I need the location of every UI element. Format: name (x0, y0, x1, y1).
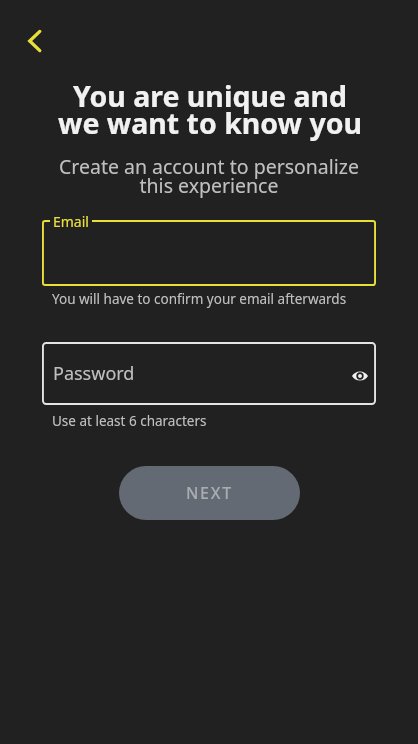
staticText: Use at least 6 characters (52, 412, 207, 430)
staticText: Email (53, 212, 89, 231)
button[interactable]: Back (12, 18, 58, 64)
button[interactable]: Password (42, 342, 376, 405)
staticText: You will have to confirm your email afte… (52, 290, 347, 308)
staticText: Password (53, 361, 135, 386)
staticText: Create an account to personalize this ex… (16, 153, 402, 199)
staticText: You are unique and we want to know you (17, 77, 403, 143)
button[interactable]: NEXT (119, 466, 300, 520)
staticText: NEXT (186, 482, 233, 504)
button[interactable]: Show password (339, 356, 375, 392)
button[interactable]: Email (42, 220, 376, 286)
